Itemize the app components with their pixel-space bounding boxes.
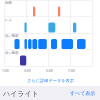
staticText: すべて表示 [70,90,96,96]
staticText: さらに詳細データを表示 [27,78,74,83]
button[interactable]: すべて表示 [70,90,96,96]
staticText: レム [5,18,12,22]
button[interactable]: さらに詳細データを表示 [0,74,100,86]
staticText: 浅い睡眠 [5,34,19,38]
staticText: 1:00 [2,68,9,73]
staticText: 7:00 [68,68,75,73]
staticText: 5:00 [46,68,53,73]
staticText: ハイライト [3,89,39,98]
staticText: 3:00 [24,68,31,73]
staticText: 覚醒 [5,1,12,5]
staticText: 深い睡眠 [5,51,19,55]
